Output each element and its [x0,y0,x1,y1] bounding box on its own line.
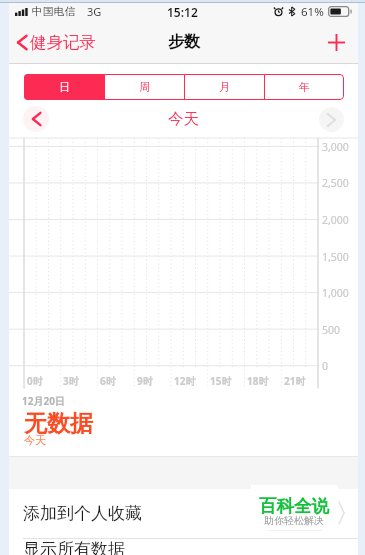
button[interactable]: 月 [185,74,264,100]
button[interactable]: 年 [265,74,344,100]
staticText: 12月20日 [22,394,65,408]
staticText: 3G [87,4,102,19]
staticText: 显示所有数据 [23,539,125,555]
staticText: 2,000 [322,213,349,227]
staticText: 18时 [247,374,269,388]
staticText: 15:12 [167,4,198,20]
staticText: 12时 [174,374,196,388]
staticText: 百科全说 [259,495,329,517]
staticText: 21时 [284,374,306,388]
staticText: 无数据 [24,409,93,438]
staticText: 61% [301,4,324,20]
staticText: 15时 [210,374,232,388]
staticText: 1,500 [322,250,349,264]
staticText: 6时 [100,374,116,388]
staticText: 中国电信 [32,5,76,19]
staticText: 0 [322,359,329,373]
staticText: 1,000 [322,286,349,300]
button[interactable]: Open [339,501,344,525]
staticText: 3时 [63,374,79,388]
staticText: 健身记录 [30,32,96,53]
button[interactable]: 周 [105,74,184,100]
staticText: 2,500 [322,176,349,190]
staticText: 日 [59,80,70,94]
staticText: 步数 [168,32,200,52]
button[interactable]: Add [315,22,358,63]
staticText: 年 [299,80,310,94]
staticText: 500 [322,323,341,337]
staticText: 今天 [168,109,199,129]
staticText: 周 [139,80,150,94]
staticText: 今天 [24,433,46,447]
button[interactable]: 日 [24,74,104,100]
button[interactable]: 百科全说 [251,485,338,531]
staticText: 月 [219,80,230,94]
button[interactable]: 添加到个人收藏 [9,489,358,538]
button[interactable]: 显示所有数据 [9,539,358,555]
staticText: 助你轻松解决 [264,514,324,527]
staticText: 0时 [27,374,43,388]
button[interactable]: Previous day [23,106,49,132]
staticText: 3,000 [322,140,349,154]
staticText: 9时 [137,374,153,388]
button[interactable]: Next day [319,107,344,132]
button[interactable]: 健身记录 [9,26,104,59]
staticText: 添加到个人收藏 [23,503,142,524]
